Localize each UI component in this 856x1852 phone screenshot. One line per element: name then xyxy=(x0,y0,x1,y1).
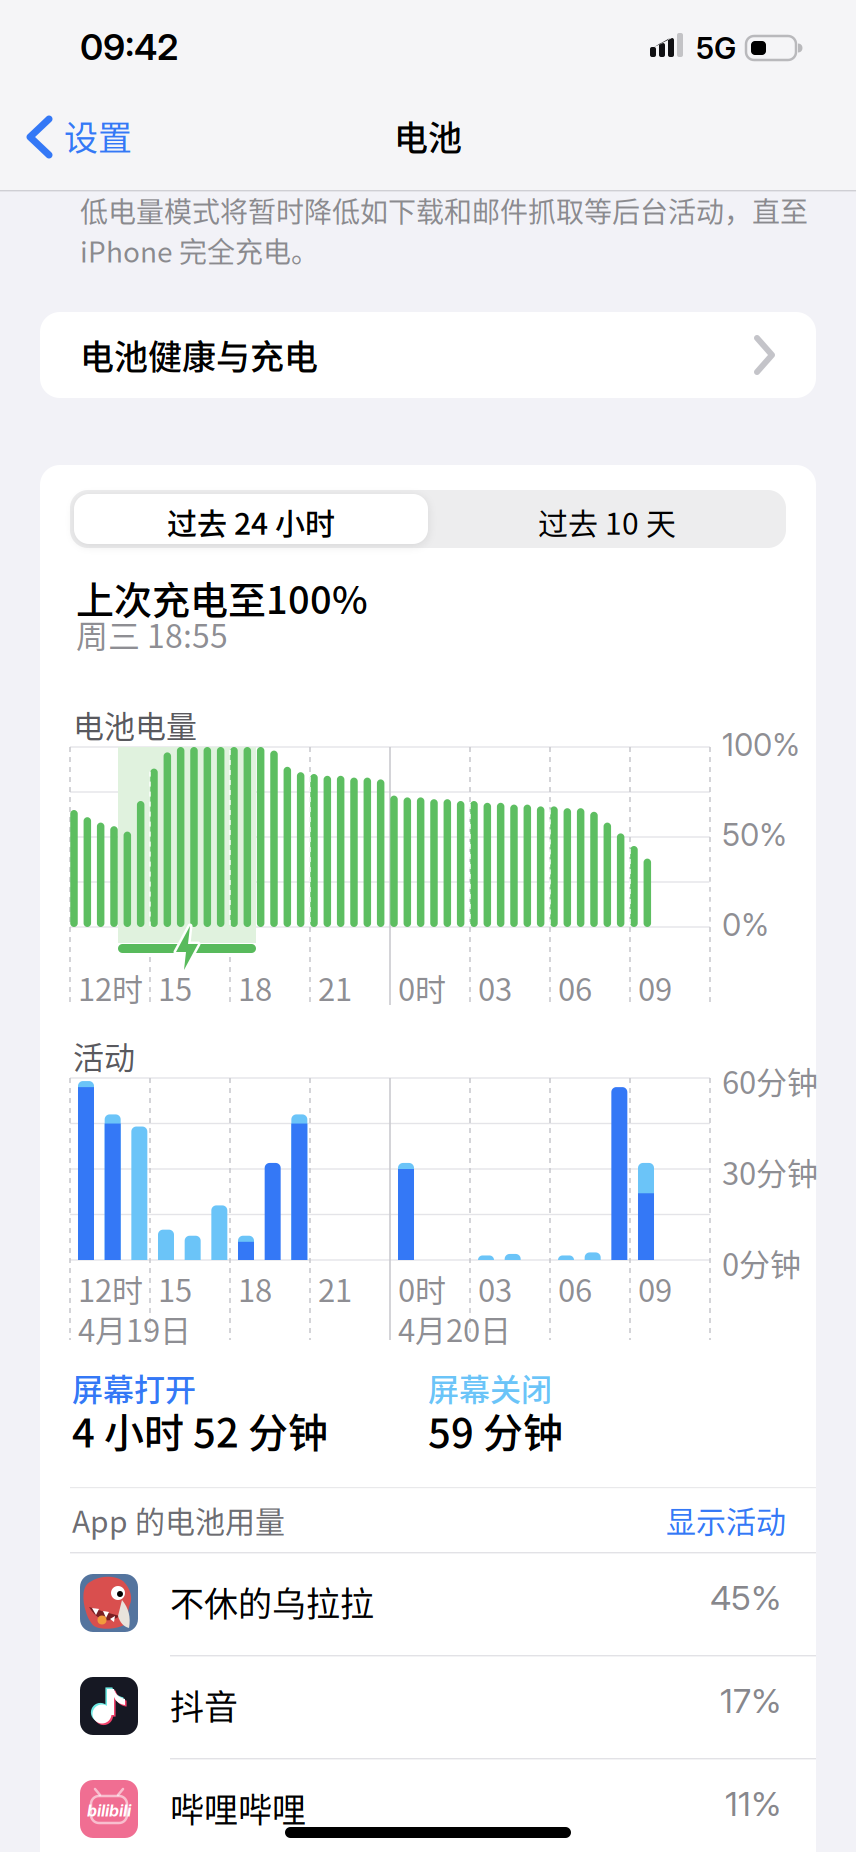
staticText: 45% xyxy=(710,1577,781,1618)
staticText: 抖音 xyxy=(170,1680,238,1729)
staticText: 电池电量 xyxy=(73,702,197,747)
staticText: 50% xyxy=(722,816,787,853)
staticText: 4月19日 xyxy=(78,1306,191,1351)
staticText: 59 分钟 xyxy=(428,1401,563,1459)
staticText: 0% xyxy=(722,906,769,943)
staticText: 电池 xyxy=(394,111,462,160)
staticText: 11% xyxy=(725,1783,781,1824)
staticText: 0分钟 xyxy=(722,1240,801,1285)
staticText: 21 xyxy=(318,965,352,1010)
staticText: 17% xyxy=(720,1680,781,1721)
staticText: iPhone 完全充电。 xyxy=(80,230,319,270)
staticText: 09:42 xyxy=(80,25,178,69)
staticText: 周三 18:55 xyxy=(76,611,228,657)
staticText: 15 xyxy=(158,965,192,1010)
staticText: 上次充电至100% xyxy=(76,570,368,625)
staticText: 0时 xyxy=(398,965,446,1010)
staticText: 过去 10 天 xyxy=(538,500,676,543)
staticText: 18 xyxy=(238,1266,272,1311)
staticText: 过去 24 小时 xyxy=(167,500,335,543)
staticText: 03 xyxy=(478,1266,512,1311)
staticText: 不休的乌拉拉 xyxy=(170,1577,374,1626)
staticText: 4月20日 xyxy=(398,1306,511,1351)
staticText: 06 xyxy=(558,1266,592,1311)
staticText: 12时 xyxy=(78,1266,143,1311)
staticText: 60分钟 xyxy=(722,1058,818,1103)
staticText: 哔哩哔哩 xyxy=(170,1783,306,1832)
staticText: 09 xyxy=(638,965,672,1010)
staticText: 低电量模式将暂时降低如下载和邮件抓取等后台活动，直至 xyxy=(80,190,808,230)
staticText: 活动 xyxy=(73,1033,135,1078)
staticText: App 的电池用量 xyxy=(72,1498,285,1541)
staticText: 屏幕打开 xyxy=(72,1365,196,1410)
staticText: 30分钟 xyxy=(722,1149,818,1194)
staticText: 06 xyxy=(558,965,592,1010)
staticText: 4 小时 52 分钟 xyxy=(72,1401,328,1459)
staticText: 0时 xyxy=(398,1266,446,1311)
staticText: 设置 xyxy=(64,111,132,160)
staticText: 100% xyxy=(722,726,800,763)
staticText: 电池健康与充电 xyxy=(80,330,318,379)
staticText: bilibili xyxy=(87,1801,131,1820)
staticText: 5G xyxy=(696,30,736,66)
staticText: 15 xyxy=(158,1266,192,1311)
staticText: 12时 xyxy=(78,965,143,1010)
staticText: 18 xyxy=(238,965,272,1010)
staticText: 21 xyxy=(318,1266,352,1311)
staticText: 显示活动 xyxy=(666,1498,786,1541)
staticText: 09 xyxy=(638,1266,672,1311)
staticText: 屏幕关闭 xyxy=(428,1365,552,1410)
staticText: 03 xyxy=(478,965,512,1010)
